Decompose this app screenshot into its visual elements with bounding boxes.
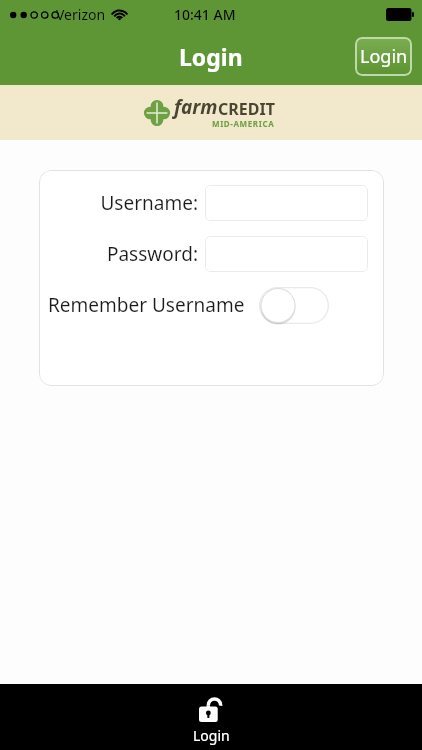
button[interactable]: [205, 185, 368, 221]
staticText: Login: [179, 41, 243, 72]
button[interactable]: Remember Username: [39, 283, 384, 327]
button[interactable]: Login: [165, 688, 258, 749]
staticText: MID-AMERICA: [212, 118, 275, 129]
staticText: Login: [193, 726, 230, 745]
staticText: Remember Username: [48, 292, 245, 318]
button[interactable]: Login: [355, 37, 412, 76]
staticText: 10:41 AM: [174, 5, 236, 24]
staticText: Verizon: [56, 5, 106, 24]
staticText: Login: [360, 44, 408, 69]
staticText: Password:: [106, 241, 198, 267]
button[interactable]: Remember Username toggle: [259, 287, 329, 324]
staticText: CREDIT: [218, 98, 275, 120]
staticText: farm: [174, 94, 218, 120]
staticText: Username:: [100, 190, 198, 216]
button[interactable]: [205, 236, 368, 272]
